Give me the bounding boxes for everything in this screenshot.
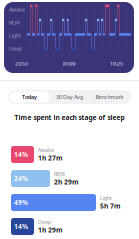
staticText: Deep [38,218,51,225]
staticText: 1h 29m [38,225,63,234]
staticText: Awake [9,6,25,13]
staticText: Benchmark [95,93,123,101]
staticText: 24% [14,174,28,183]
button[interactable]: 30 Day Avg [49,91,89,102]
staticText: Deep [9,45,22,52]
button[interactable]: Benchmark [89,91,129,102]
staticText: 49% [14,198,28,207]
staticText: 5h 7m [100,201,121,210]
staticText: 1h 27m [38,153,63,162]
button[interactable]: Today [9,91,49,102]
staticText: Awake [38,146,54,153]
staticText: Today [22,93,37,101]
staticText: REM [54,170,65,177]
staticText: Light [100,194,112,201]
staticText: 23:53 [15,60,28,67]
staticText: 10:25 [110,60,123,67]
staticText: 14% [14,222,28,231]
staticText: 30 Day Avg [56,93,83,101]
staticText: 2h 29m [54,177,79,186]
staticText: Time spent in each stage of sleep [14,113,124,122]
staticText: 14% [14,150,28,159]
staticText: Light [9,32,21,39]
staticText: 05:00 [62,60,75,67]
staticText: REM [9,19,20,26]
